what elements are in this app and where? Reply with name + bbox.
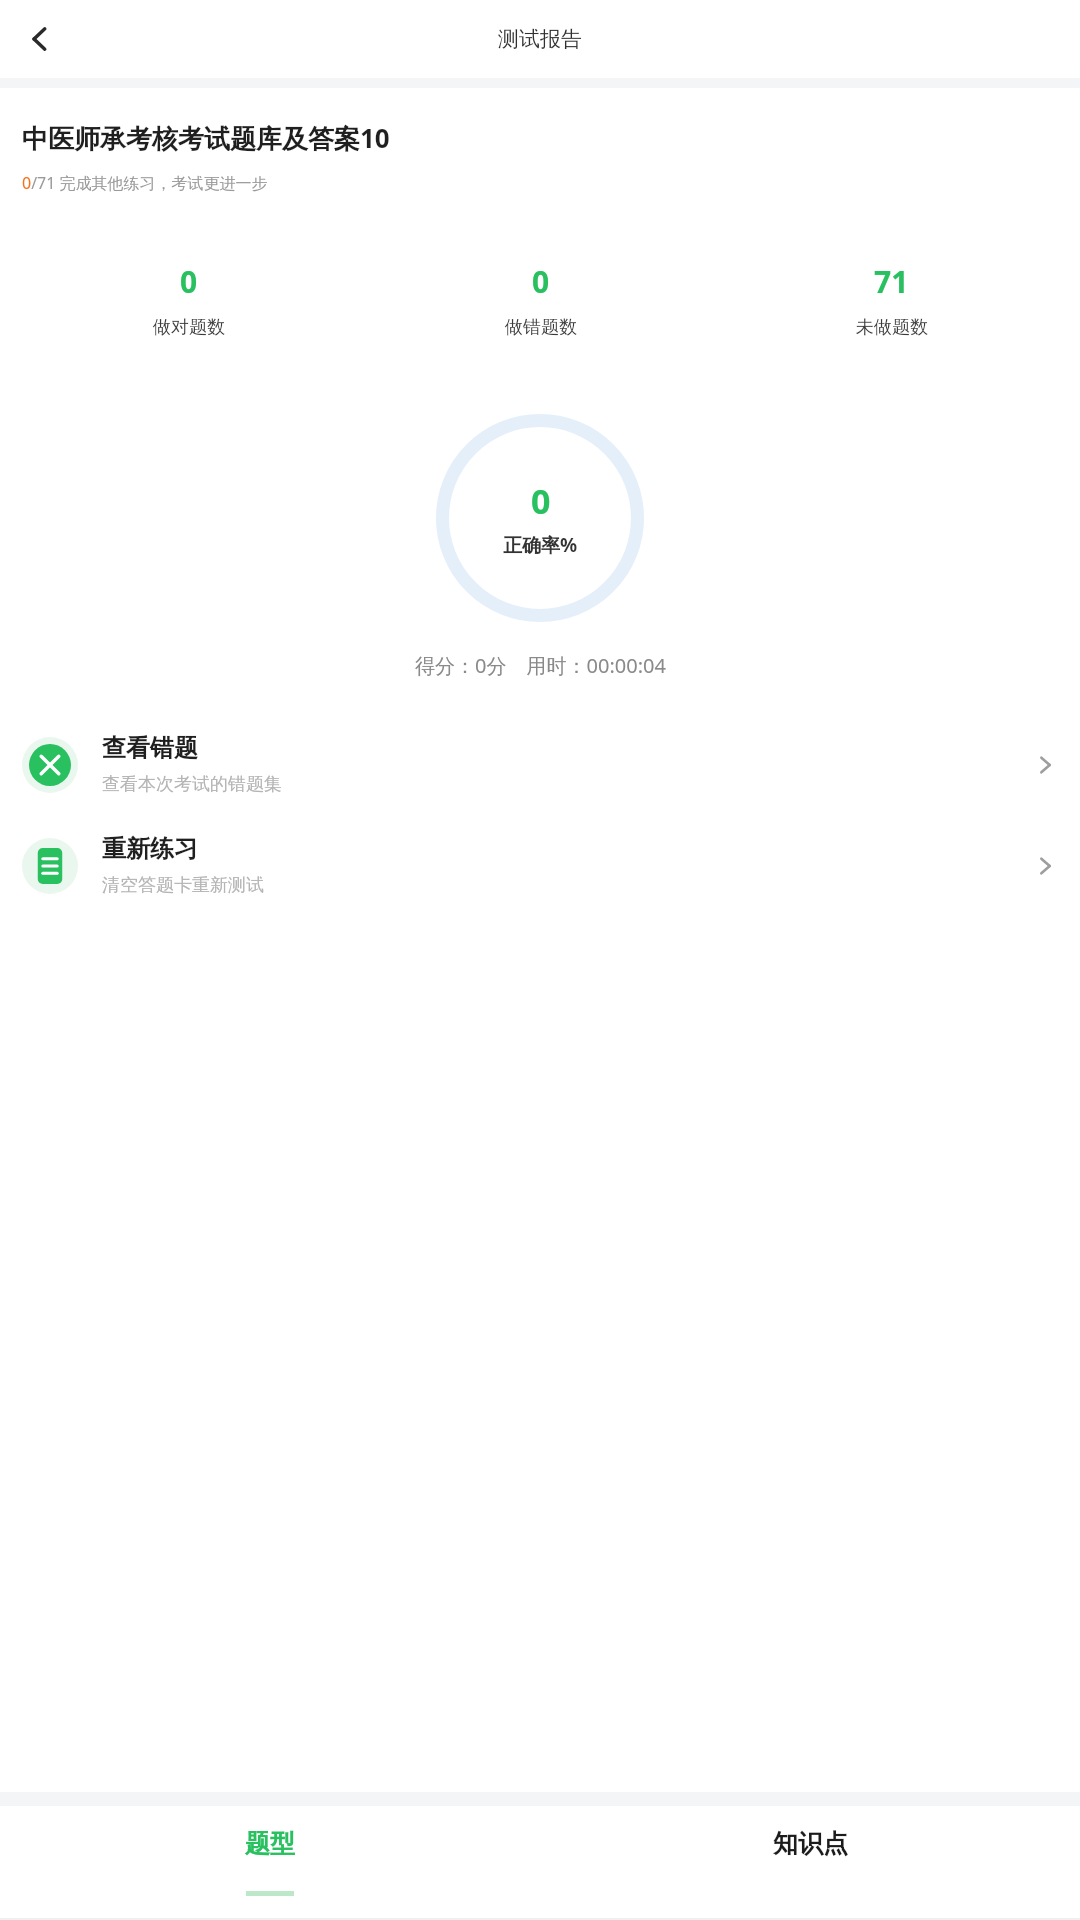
staticText: 重新练习 — [102, 834, 198, 864]
staticText: 知识点 — [773, 1828, 848, 1859]
button[interactable]: 0 — [374, 238, 707, 362]
staticText: 测试报告 — [498, 26, 582, 52]
staticText: 做对题数 — [153, 316, 225, 339]
button[interactable]: 题型 — [0, 1806, 540, 1918]
staticText: 中医师承考核考试题库及答案10 — [22, 120, 390, 156]
button[interactable]: 重新练习 — [0, 824, 1080, 907]
staticText: 查看错题 — [102, 733, 198, 763]
staticText: 0/71 完成其他练习，考试更进一步 — [22, 172, 268, 194]
button[interactable]: 查看错题 — [0, 723, 1080, 806]
staticText: 未做题数 — [856, 316, 928, 339]
button[interactable]: Back — [10, 9, 70, 69]
button[interactable]: 71 — [725, 238, 1058, 362]
staticText: 正确率% — [503, 532, 578, 558]
staticText: 0 — [531, 478, 551, 524]
staticText: 清空答题卡重新测试 — [102, 874, 264, 897]
staticText: 做错题数 — [505, 316, 577, 339]
button[interactable]: 0 — [22, 238, 356, 362]
staticText: 查看本次考试的错题集 — [102, 773, 282, 796]
staticText: 题型 — [245, 1828, 295, 1859]
button[interactable]: 知识点 — [540, 1806, 1080, 1918]
staticText: 得分：0分 用时：00:00:04 — [415, 652, 666, 679]
staticText: 0 — [532, 261, 550, 302]
staticText: 71 — [874, 261, 909, 302]
staticText: 0 — [180, 261, 198, 302]
